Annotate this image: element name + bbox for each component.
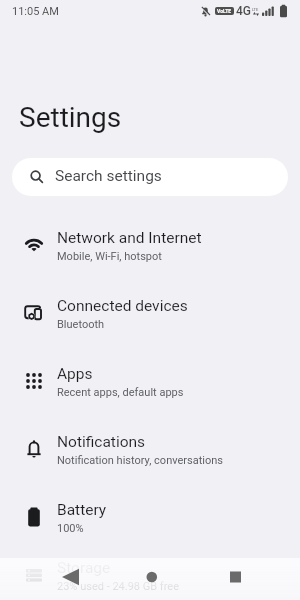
staticText: Search settings xyxy=(55,167,162,185)
button[interactable]: Network and Internet xyxy=(0,212,300,280)
staticText: VoLTE xyxy=(217,8,232,14)
staticText: 23% used - 24.98 GB free xyxy=(57,580,179,593)
button[interactable]: Storage xyxy=(0,552,300,600)
staticText: Apps xyxy=(57,365,93,383)
button[interactable]: Connected devices xyxy=(0,280,300,348)
staticText: Notification history, conversations xyxy=(57,454,223,467)
staticText: Notifications xyxy=(57,433,146,451)
staticText: Settings xyxy=(19,101,122,134)
button[interactable] xyxy=(0,558,300,600)
button[interactable]: Notifications xyxy=(0,416,300,484)
staticText: LTE xyxy=(252,7,259,12)
staticText: 4G xyxy=(236,4,251,18)
button[interactable]: Apps xyxy=(0,348,300,416)
staticText: Storage xyxy=(57,559,111,577)
staticText: Recent apps, default apps xyxy=(57,386,184,399)
staticText: 100% xyxy=(57,522,84,535)
staticText: Bluetooth xyxy=(57,318,105,331)
staticText: 11:05 AM xyxy=(12,5,59,18)
button[interactable]: Search settings xyxy=(12,158,288,196)
button[interactable]: Battery xyxy=(0,484,300,552)
staticText: Connected devices xyxy=(57,297,188,315)
staticText: Battery xyxy=(57,501,107,519)
staticText: Mobile, Wi-Fi, hotspot xyxy=(57,250,162,263)
staticText: Network and Internet xyxy=(57,229,202,247)
